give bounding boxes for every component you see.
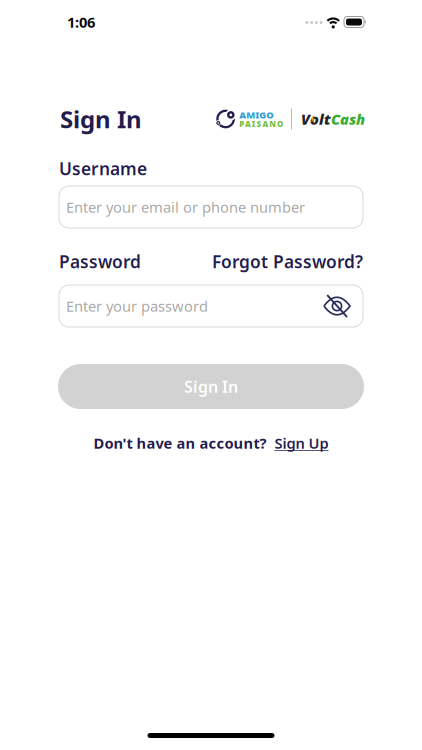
- staticText: Sign In: [184, 376, 238, 397]
- button[interactable]: Show password: [324, 296, 363, 315]
- staticText: 1:06: [67, 12, 95, 32]
- staticText: Enter your password: [66, 296, 208, 316]
- staticText: PAISANO: [239, 119, 283, 129]
- staticText: Enter your email or phone number: [66, 197, 305, 217]
- staticText: Sign Up: [274, 433, 328, 453]
- staticText: Volt: [301, 109, 331, 129]
- button[interactable]: Sign In: [58, 364, 364, 409]
- staticText: Password: [59, 250, 141, 273]
- staticText: Don't have an account?: [93, 433, 266, 453]
- button[interactable]: Sign Up: [274, 433, 328, 453]
- button[interactable]: Username: [59, 186, 363, 228]
- staticText: Sign In: [60, 103, 142, 135]
- button[interactable]: Password: [59, 285, 363, 327]
- staticText: Username: [59, 157, 147, 180]
- button[interactable]: Forgot Password?: [212, 250, 363, 273]
- staticText: Forgot Password?: [212, 250, 363, 273]
- staticText: Cash: [331, 109, 365, 129]
- staticText: AMIGO: [239, 109, 273, 121]
